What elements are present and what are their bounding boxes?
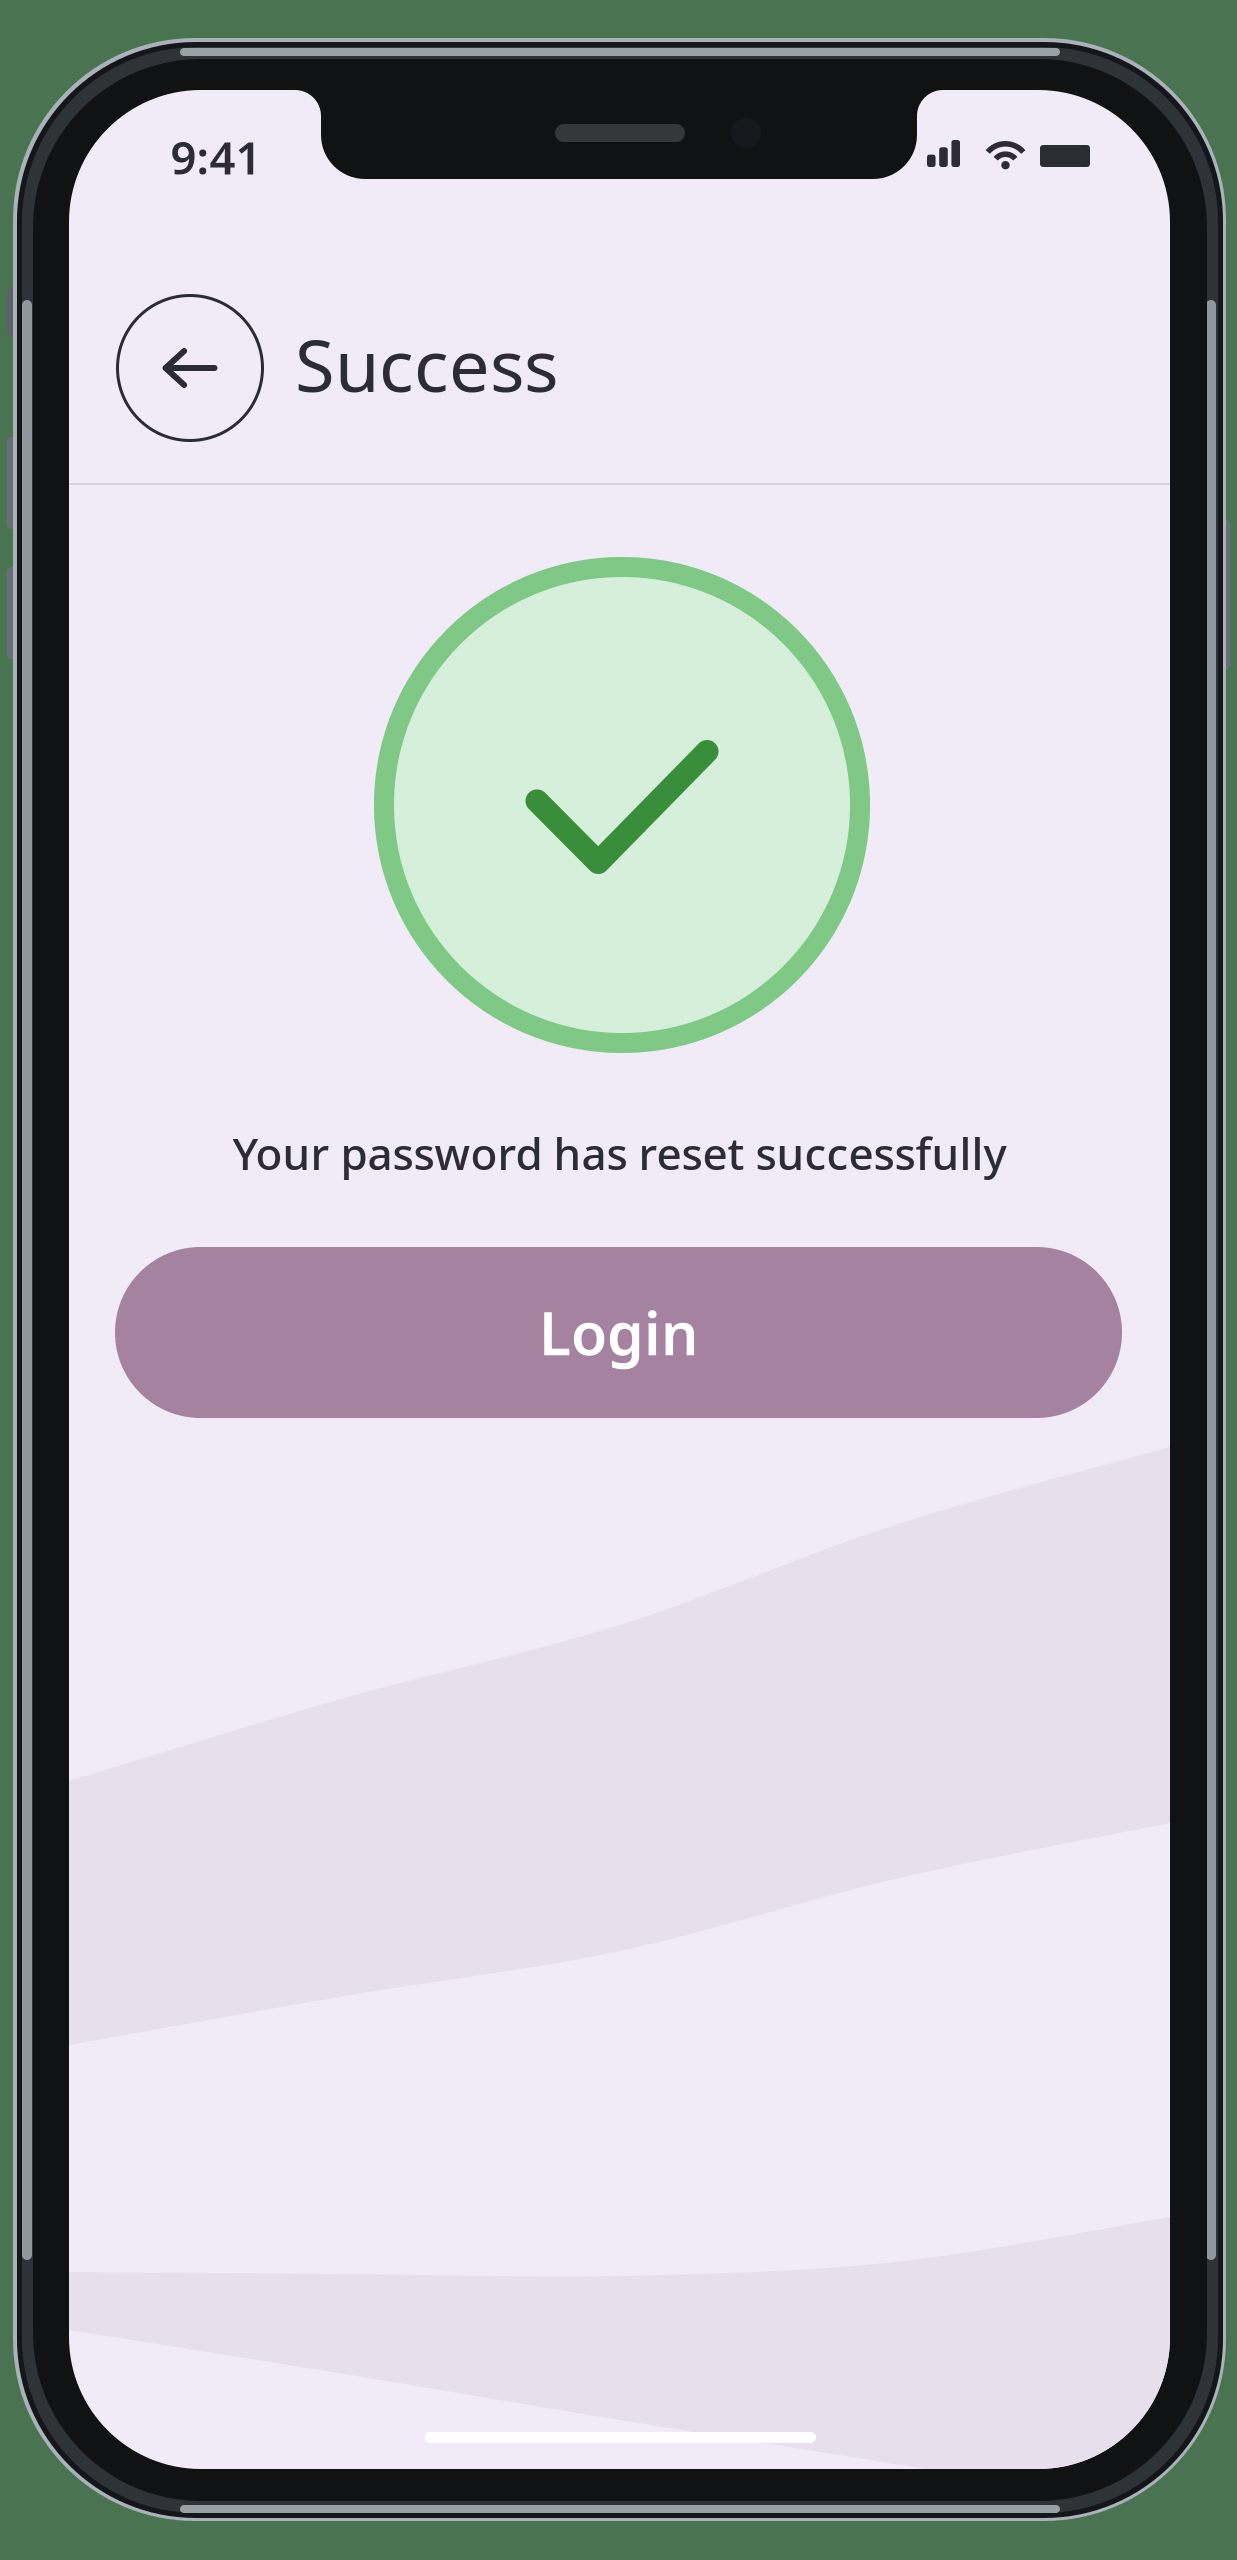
- staticText: Success: [295, 316, 558, 412]
- staticText: Your password has reset successfully: [232, 1124, 1006, 1182]
- button[interactable]: Back: [106, 284, 274, 452]
- button[interactable]: Login: [115, 1247, 1122, 1418]
- staticText: Login: [539, 1293, 698, 1371]
- staticText: 9:41: [170, 127, 261, 187]
